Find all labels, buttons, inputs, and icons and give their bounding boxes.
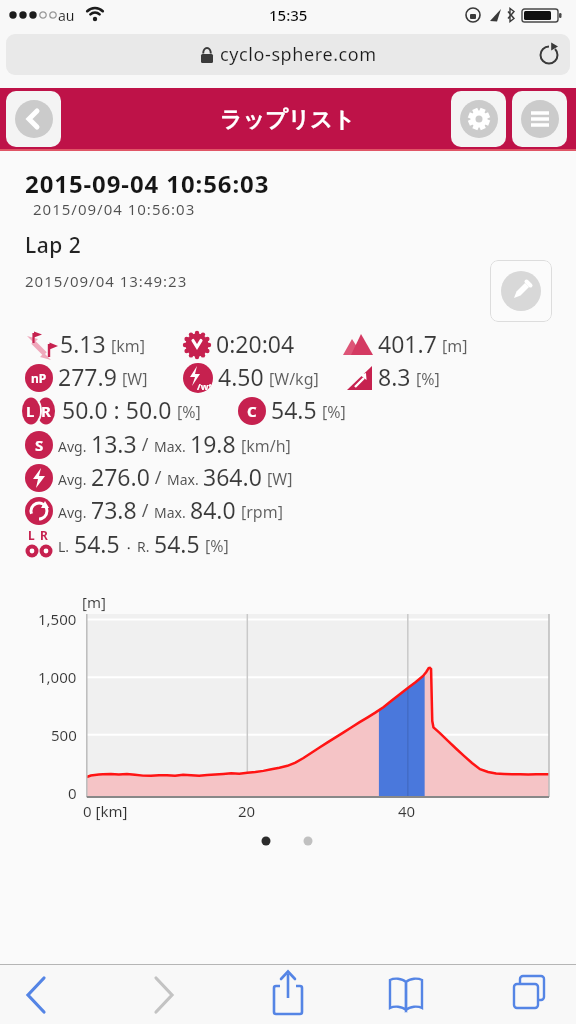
staticText: 2015-09-04 10:56:03 (25, 167, 270, 200)
staticText: 0 (68, 783, 77, 803)
staticText: 0 [km] (83, 801, 128, 821)
button[interactable] (142, 966, 186, 1022)
staticText: [%] (177, 401, 201, 423)
staticText: [m] (442, 335, 468, 357)
staticText: L. (58, 537, 70, 556)
staticText: / (137, 498, 154, 523)
staticText: cyclo-sphere.com (220, 42, 377, 67)
staticText: / (137, 432, 154, 457)
staticText: [W] (122, 368, 148, 390)
staticText: L (28, 527, 35, 543)
staticText: 50.0 : 50.0 (62, 394, 172, 425)
button[interactable]: cyclo-sphere.com (6, 34, 570, 75)
staticText: Max. (154, 503, 186, 522)
staticText: [%] (416, 368, 440, 390)
button[interactable] (266, 966, 310, 1022)
staticText: 1,000 (38, 667, 77, 687)
button[interactable] (6, 91, 61, 147)
staticText: [km] (111, 335, 146, 357)
staticText: S (35, 435, 44, 455)
staticText: 276.0 (91, 461, 150, 492)
staticText: [W] (267, 468, 293, 490)
staticText: [rpm] (241, 501, 283, 523)
staticText: C (247, 401, 257, 421)
staticText: 0:20:04 (216, 328, 295, 359)
staticText: 40 (398, 801, 416, 821)
staticText: [km/h] (241, 435, 291, 457)
staticText: ・ (122, 540, 135, 556)
staticText: [m] (82, 592, 106, 612)
staticText: Max. (154, 437, 186, 456)
staticText: R (41, 401, 51, 421)
button[interactable] (490, 260, 552, 322)
staticText: 401.7 (378, 328, 437, 359)
staticText: R (40, 527, 48, 543)
staticText: 84.0 (190, 494, 236, 525)
staticText: 8.3 (378, 361, 411, 392)
staticText: nP (31, 370, 47, 386)
staticText: 73.8 (91, 494, 137, 525)
staticText: R. (137, 537, 150, 556)
staticText: 2015/09/04 13:49:23 (25, 271, 188, 291)
staticText: /wt (197, 380, 213, 392)
staticText: 277.9 (58, 361, 117, 392)
staticText: [W/kg] (269, 368, 319, 390)
staticText: L (26, 401, 35, 421)
staticText: 500 (51, 725, 77, 745)
staticText: Avg. (58, 503, 87, 522)
staticText: au (58, 6, 75, 25)
staticText: 13.3 (91, 428, 137, 459)
staticText: 364.0 (203, 461, 262, 492)
staticText: ラップリスト (220, 106, 356, 134)
staticText: Max. (167, 470, 199, 489)
button[interactable] (451, 91, 506, 147)
staticText: 1,500 (38, 609, 77, 629)
staticText: Avg. (58, 470, 87, 489)
button[interactable] (508, 966, 552, 1022)
button[interactable] (512, 91, 567, 147)
staticText: 54.5 (271, 394, 317, 425)
staticText: 19.8 (190, 428, 236, 459)
staticText: 4.50 (218, 361, 264, 392)
button[interactable] (384, 966, 428, 1022)
staticText: [%] (205, 535, 229, 557)
staticText: [%] (322, 401, 346, 423)
staticText: Avg. (58, 437, 87, 456)
staticText: Lap 2 (25, 231, 82, 260)
staticText: / (150, 465, 167, 490)
staticText: 20 (238, 801, 256, 821)
button[interactable] (16, 966, 60, 1022)
staticText: 5.13 (60, 328, 106, 359)
staticText: 15:35 (269, 5, 308, 25)
staticText: 54.5 (154, 528, 200, 559)
staticText: 54.5 (74, 528, 120, 559)
staticText: 2015/09/04 10:56:03 (33, 199, 196, 219)
